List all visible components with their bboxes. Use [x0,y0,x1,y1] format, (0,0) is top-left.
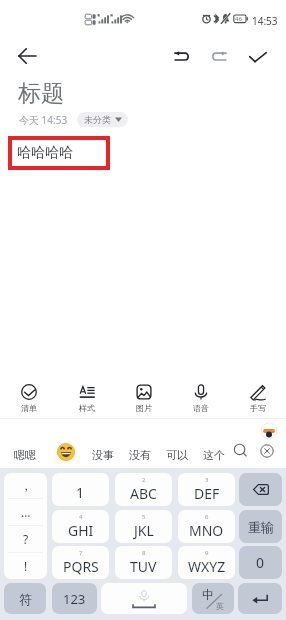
staticText: ! [24,558,28,574]
button[interactable]: Enter [238,583,282,614]
button[interactable]: 这个 [201,444,227,466]
button[interactable]: … [4,499,47,525]
button[interactable]: 3 [178,473,235,506]
staticText: WXYZ [188,557,226,576]
staticText: 46 [235,15,242,23]
staticText: PQRS [63,557,99,576]
button[interactable]: Emoji [57,443,75,461]
button[interactable]: 8 [115,546,172,579]
staticText: 中 [202,587,214,602]
button[interactable]: 手写 [229,376,286,418]
button[interactable]: Back [12,40,44,72]
button[interactable]: ， [4,473,47,498]
button[interactable]: 可以 [164,444,190,466]
button[interactable]: Backspace [239,473,282,506]
staticText: 手写 [250,403,266,413]
staticText: DEF [194,484,220,503]
button[interactable]: 嗯嗯 [12,444,38,466]
staticText: 0 [256,553,265,572]
staticText: ABC [130,484,157,503]
button[interactable]: 9 [178,546,235,579]
button[interactable]: Undo [167,40,199,72]
staticText: 14:53 [252,14,278,28]
button[interactable]: 清单 [0,376,58,418]
staticText: 语音 [193,403,209,413]
staticText: 清单 [21,403,37,413]
button[interactable]: 123 [52,583,97,614]
button[interactable]: 2 [115,473,172,506]
staticText: 样式 [79,403,95,413]
button[interactable]: Search [230,440,252,462]
button[interactable]: 1 [52,473,109,506]
button[interactable]: 重输 [239,510,282,543]
staticText: 5 [142,513,146,521]
button[interactable]: 哈哈哈哈 [12,140,106,166]
button[interactable]: 图片 [115,376,172,418]
staticText: 图片 [136,403,152,413]
button[interactable]: ! [4,553,47,579]
staticText: TUV [130,557,157,576]
staticText: … [21,504,31,520]
button[interactable]: 没有 [127,444,153,466]
staticText: 9 [205,549,209,557]
button[interactable]: 语音 [172,376,229,418]
staticText: 今天 14:53 [19,113,68,127]
button[interactable]: 没事 [90,444,116,466]
staticText: ? [23,531,29,547]
staticText: GHI [68,521,94,540]
staticText: JKL [134,521,154,540]
button[interactable]: 符 [4,583,46,614]
staticText: 没有 [129,448,151,462]
staticText: 没事 [92,448,114,462]
button[interactable]: 5 [115,510,172,543]
button[interactable]: Close keyboard [256,440,278,462]
button[interactable]: 中英切换 [192,583,234,614]
staticText: 2 [142,476,146,484]
staticText: MNO [189,521,224,540]
staticText: 123 [63,590,86,608]
staticText: 标题 [18,79,64,108]
staticText: 可以 [166,448,188,462]
staticText: 3 [205,476,209,484]
button[interactable]: ? [4,526,47,552]
button[interactable]: 未分类 [77,112,128,127]
button[interactable]: 0 [239,546,282,579]
button[interactable]: 样式 [58,376,115,418]
staticText: 1 [76,483,85,502]
button[interactable]: 6 [178,510,235,543]
button[interactable]: Done [242,40,274,72]
button[interactable]: Redo [202,40,234,72]
button[interactable]: Space [101,583,187,614]
staticText: 英 [216,601,224,611]
staticText: 符 [19,591,32,607]
staticText: 这个 [203,448,225,462]
staticText: 4 [79,513,83,521]
staticText: 7 [79,549,83,557]
button[interactable]: Stickers [261,423,277,439]
staticText: 8 [142,549,146,557]
staticText: 重输 [248,519,274,535]
staticText: 未分类 [84,114,111,125]
staticText: 嗯嗯 [14,448,36,462]
button[interactable]: 4 [52,510,109,543]
staticText: 6 [205,513,209,521]
staticText: ， [20,478,32,493]
staticText: 哈哈哈哈 [17,144,73,162]
button[interactable]: 7 [52,546,109,579]
